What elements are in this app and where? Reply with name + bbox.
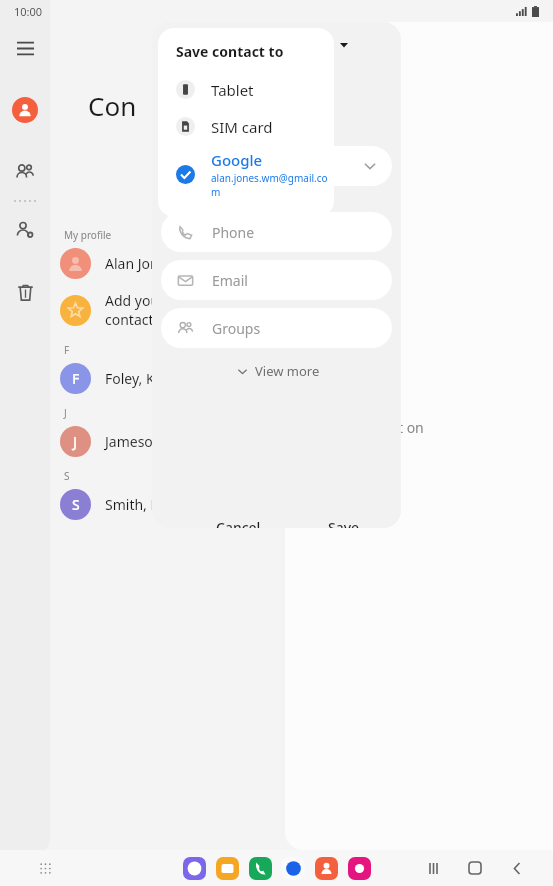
staticText: My profile <box>64 228 112 242</box>
button[interactable]: Alan Jon <box>60 248 235 279</box>
button[interactable]: Add your <box>60 291 235 329</box>
button[interactable]: Email <box>161 260 392 300</box>
button[interactable]: Menu <box>3 26 47 70</box>
button[interactable]: Profile <box>3 88 47 132</box>
staticText: Con <box>88 88 137 123</box>
staticText: Add your <box>105 291 165 310</box>
staticText: View more <box>255 362 320 380</box>
staticText: contacts <box>105 310 161 329</box>
staticText: act from the list on <box>300 418 424 437</box>
staticText: Save <box>328 518 360 528</box>
staticText: S <box>72 495 80 514</box>
staticText: 10:00 <box>14 4 43 19</box>
button[interactable]: Home <box>463 856 487 880</box>
staticText: Groups <box>212 319 261 338</box>
staticText: Tablet <box>211 80 254 100</box>
button[interactable]: Tablet <box>158 71 334 108</box>
staticText: Cancel <box>216 518 261 528</box>
staticText: Phone <box>212 223 255 242</box>
staticText: Email <box>212 271 248 290</box>
staticText: Save contact to <box>176 42 284 61</box>
staticText: F <box>64 343 70 357</box>
staticText: Foley, Ke <box>105 369 163 388</box>
button[interactable]: Phone <box>161 212 392 252</box>
button[interactable]: Apps <box>32 855 58 881</box>
button[interactable]: Cancel <box>200 512 277 528</box>
staticText: F <box>72 369 80 388</box>
staticText: J <box>73 432 78 451</box>
button[interactable]: S <box>60 489 235 520</box>
button[interactable]: Recents <box>421 856 445 880</box>
staticText: Smith, Maria <box>105 495 189 514</box>
button[interactable]: Internet <box>183 857 206 880</box>
button[interactable]: View more <box>230 358 326 384</box>
button[interactable]: Trash <box>3 270 47 314</box>
other: Expand name <box>362 158 378 174</box>
staticText: alan.jones.wm@gmail.com <box>211 171 334 199</box>
button[interactable]: Phone <box>249 857 272 880</box>
button[interactable]: Back <box>505 856 529 880</box>
button[interactable]: Messages <box>282 857 305 880</box>
button[interactable]: SIM card <box>158 108 334 145</box>
staticText: Jameson <box>105 432 162 451</box>
button[interactable]: Camera <box>348 857 371 880</box>
button[interactable]: Groups <box>161 308 392 348</box>
staticText: SIM card <box>211 117 273 137</box>
staticText: J <box>64 406 67 420</box>
button[interactable]: J <box>60 426 235 457</box>
button[interactable]: Groups <box>3 150 47 194</box>
staticText: Alan Jon <box>105 254 159 273</box>
button[interactable]: Expand name <box>161 146 392 186</box>
button[interactable]: F <box>60 363 235 394</box>
button[interactable]: Contacts <box>315 857 338 880</box>
button[interactable]: Google <box>158 145 334 203</box>
button[interactable]: My Files <box>216 857 239 880</box>
staticText: Google <box>211 150 263 170</box>
button[interactable]: Save <box>312 512 376 528</box>
staticText: S <box>64 469 70 483</box>
button[interactable]: Manage contacts <box>3 208 47 252</box>
